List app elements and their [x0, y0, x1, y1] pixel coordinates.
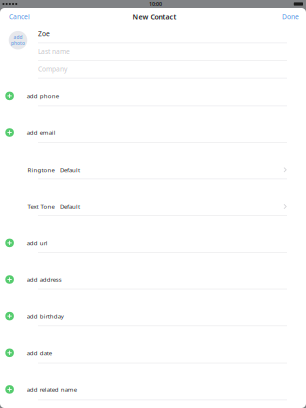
- staticText: Ringtone: [27, 166, 54, 174]
- staticText: Done: [282, 12, 299, 21]
- staticText: add related name: [27, 385, 77, 393]
- staticText: New Contact: [132, 12, 176, 21]
- staticText: 10:00: [149, 0, 162, 8]
- button[interactable]: add url: [5, 237, 287, 249]
- button[interactable]: add email: [5, 126, 287, 138]
- button[interactable]: add date: [5, 347, 287, 359]
- button[interactable]: Ringtone: [27, 164, 287, 176]
- staticText: Company: [38, 64, 67, 74]
- staticText: add date: [27, 349, 52, 357]
- button[interactable]: add phone: [5, 90, 287, 102]
- staticText: add phone: [27, 92, 59, 100]
- button[interactable]: add address: [5, 273, 287, 285]
- staticText: add address: [27, 275, 62, 284]
- staticText: Default: [60, 202, 80, 211]
- button[interactable]: Add photo: [7, 29, 29, 51]
- button[interactable]: add birthday: [5, 310, 287, 322]
- staticText: add url: [27, 239, 48, 247]
- button[interactable]: Cancel: [0, 8, 40, 25]
- button[interactable]: Text Tone: [27, 200, 287, 212]
- staticText: add birthday: [27, 312, 64, 320]
- button[interactable]: add related name: [5, 383, 287, 395]
- staticText: Cancel: [9, 12, 30, 21]
- staticText: Default: [60, 166, 80, 174]
- staticText: add email: [27, 128, 56, 137]
- staticText: photo: [11, 40, 25, 46]
- staticText: add: [13, 34, 22, 40]
- button[interactable]: Done: [272, 8, 306, 25]
- staticText: Last name: [38, 47, 70, 56]
- staticText: Text Tone: [27, 202, 54, 211]
- staticText: Zoe: [38, 29, 50, 38]
